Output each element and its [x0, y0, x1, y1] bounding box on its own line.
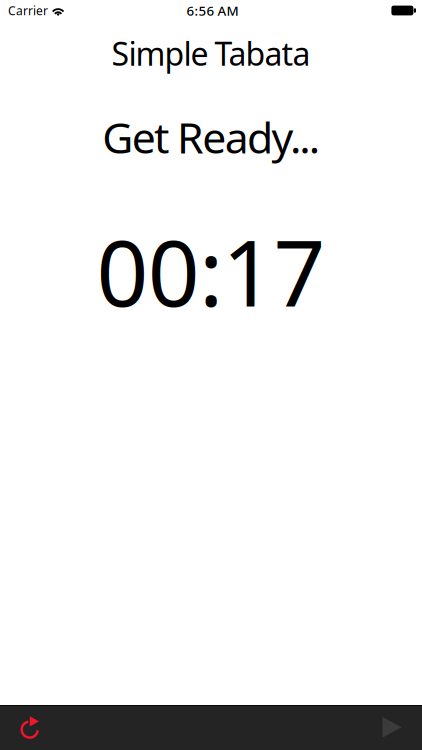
staticText: Simple Tabata	[111, 32, 310, 74]
button[interactable]: Start workout	[362, 705, 422, 750]
staticText: Carrier	[8, 2, 48, 18]
staticText: 00:17	[97, 211, 325, 332]
staticText: 6:56 AM	[186, 2, 238, 19]
button[interactable]: Restart workout	[0, 705, 60, 750]
staticText: Get Ready...	[102, 108, 320, 165]
